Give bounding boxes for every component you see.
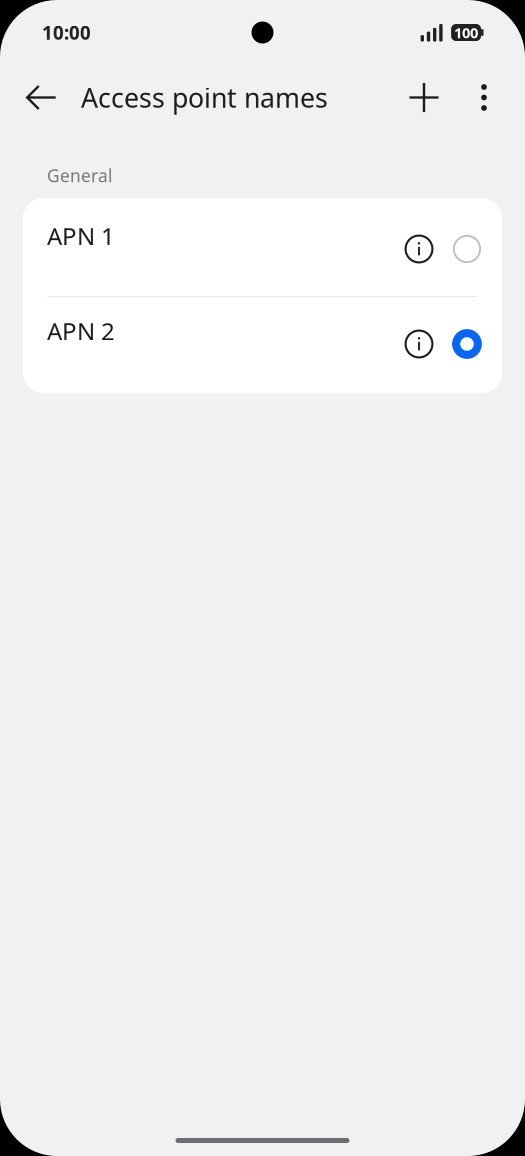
button[interactable]: More options: [457, 70, 511, 124]
button[interactable]: Select APN 1: [443, 225, 491, 273]
staticText: 100: [454, 23, 478, 42]
button[interactable]: APN 1: [23, 198, 502, 296]
button[interactable]: Add access point: [397, 70, 451, 124]
staticText: 10:00: [42, 20, 91, 45]
button[interactable]: APN 2 details: [395, 320, 443, 368]
staticText: APN 1: [47, 220, 115, 252]
button[interactable]: APN 2: [23, 297, 502, 393]
button[interactable]: Navigate up: [14, 70, 68, 124]
button[interactable]: APN 1 details: [395, 225, 443, 273]
staticText: APN 2: [47, 315, 115, 347]
staticText: General: [47, 164, 112, 187]
button[interactable]: Select APN 2: [443, 320, 491, 368]
staticText: Access point names: [81, 80, 328, 115]
